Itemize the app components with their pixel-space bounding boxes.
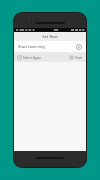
staticText: Select Again [23,56,42,60]
button[interactable]: Settings [76,44,82,50]
staticText: Start Learning [18,44,45,49]
staticText: Set Rest [42,34,58,39]
button[interactable]: Start [68,54,84,61]
button[interactable]: Select Again [16,54,43,61]
button[interactable]: Start Learning [14,41,86,52]
button[interactable]: Set Rest [14,32,86,41]
staticText: Start [75,56,83,60]
